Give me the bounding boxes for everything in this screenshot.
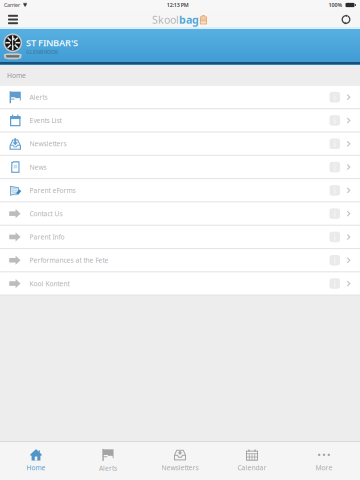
button[interactable]: Events List: [0, 109, 360, 132]
button[interactable]: Kool Kontent: [0, 272, 360, 295]
button[interactable]: Alerts: [0, 86, 360, 108]
button[interactable]: More: [288, 441, 360, 480]
staticText: Parent eForms: [29, 186, 75, 195]
staticText: News: [29, 163, 46, 171]
staticText: Alerts: [29, 93, 47, 102]
button[interactable]: Newsletters: [144, 441, 216, 480]
staticText: Home: [26, 463, 45, 472]
staticText: More: [315, 463, 332, 472]
button[interactable]: News: [0, 156, 360, 178]
button[interactable]: Newsletters: [0, 133, 360, 155]
button[interactable]: Performances at the Fete: [0, 249, 360, 271]
staticText: Contact Us: [29, 209, 62, 218]
staticText: Parent Info: [29, 232, 64, 241]
staticText: Newsletters: [29, 139, 66, 148]
staticText: bag: [179, 12, 199, 27]
button[interactable]: Menu: [2, 11, 24, 27]
staticText: Alerts: [99, 464, 117, 473]
staticText: 100%: [328, 1, 342, 9]
staticText: Performances at the Fete: [29, 256, 108, 265]
button[interactable]: Parent Info: [0, 226, 360, 248]
button[interactable]: Refresh: [335, 11, 357, 27]
button[interactable]: Parent eForms: [0, 179, 360, 201]
staticText: Calendar: [237, 463, 266, 472]
staticText: Kool Kontent: [29, 279, 69, 288]
button[interactable]: Home: [0, 441, 72, 480]
button[interactable]: Contact Us: [0, 202, 360, 225]
button[interactable]: Alerts: [72, 441, 144, 480]
staticText: Home: [7, 71, 26, 80]
staticText: Carrier: [4, 1, 20, 9]
staticText: Newsletters: [161, 463, 198, 472]
staticText: Skool: [152, 12, 179, 27]
staticText: GLENBROOK: [26, 48, 58, 55]
staticText: ST FINBAR'S: [26, 36, 78, 49]
staticText: Events List: [29, 116, 61, 125]
staticText: 12:13 PM: [167, 1, 189, 9]
button[interactable]: Calendar: [216, 441, 288, 480]
